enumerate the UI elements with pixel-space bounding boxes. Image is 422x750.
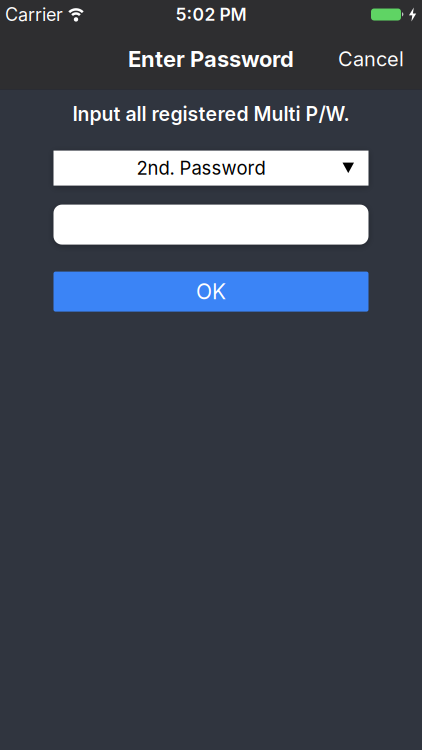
staticText: Input all registered Multi P/W. bbox=[72, 102, 349, 126]
staticText: 2nd. Password bbox=[136, 157, 265, 179]
button[interactable]: Password input field bbox=[53, 205, 368, 245]
staticText: Cancel bbox=[338, 47, 404, 71]
button[interactable]: OK bbox=[53, 272, 368, 312]
staticText: Carrier bbox=[5, 4, 63, 25]
button[interactable]: 2nd. Password bbox=[53, 151, 368, 186]
staticText: Enter Password bbox=[128, 46, 294, 72]
staticText: 5:02 PM bbox=[175, 4, 246, 25]
staticText: OK bbox=[196, 279, 226, 304]
button[interactable]: Cancel bbox=[338, 46, 404, 70]
